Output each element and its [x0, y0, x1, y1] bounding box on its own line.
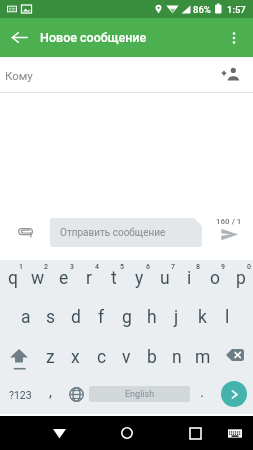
- staticText: ,: [49, 383, 52, 401]
- button[interactable]: ?123: [0, 375, 38, 414]
- button[interactable]: l: [215, 298, 240, 336]
- staticText: 4: [95, 263, 99, 271]
- staticText: 0: [247, 263, 251, 271]
- staticText: b: [147, 347, 157, 368]
- staticText: .: [200, 383, 204, 401]
- staticText: English: [125, 389, 155, 400]
- staticText: c: [97, 347, 107, 368]
- button[interactable]: Switch keyboard: [218, 416, 252, 450]
- button[interactable]: 2: [25, 259, 50, 297]
- staticText: 5: [120, 263, 124, 271]
- button[interactable]: h: [139, 298, 164, 336]
- staticText: 160 / 1: [216, 217, 242, 226]
- button[interactable]: More options: [214, 18, 253, 57]
- staticText: w: [31, 268, 45, 289]
- button[interactable]: Send: [204, 215, 252, 253]
- button[interactable]: 9: [202, 259, 227, 297]
- staticText: u: [160, 268, 170, 289]
- staticText: x: [71, 347, 80, 368]
- button[interactable]: n: [164, 338, 189, 376]
- staticText: m: [195, 347, 211, 368]
- button[interactable]: ,: [38, 375, 63, 414]
- button[interactable]: Отправить сообщение: [50, 218, 202, 247]
- button[interactable]: x: [63, 338, 88, 376]
- staticText: z: [46, 347, 55, 368]
- button[interactable]: 1: [0, 259, 25, 297]
- button[interactable]: 6: [127, 259, 152, 297]
- staticText: p: [236, 268, 246, 289]
- staticText: n: [172, 347, 182, 368]
- button[interactable]: Back: [42, 416, 76, 450]
- staticText: v: [122, 347, 131, 368]
- staticText: 8: [196, 263, 200, 271]
- staticText: s: [46, 307, 56, 328]
- button[interactable]: 5: [101, 259, 126, 297]
- button[interactable]: 8: [177, 259, 202, 297]
- button[interactable]: 4: [76, 259, 101, 297]
- button[interactable]: English: [89, 386, 190, 402]
- staticText: a: [21, 307, 31, 328]
- staticText: ?123: [9, 389, 32, 401]
- staticText: g: [122, 307, 132, 328]
- staticText: Новое сообщение: [40, 30, 147, 45]
- button[interactable]: c: [89, 338, 114, 376]
- button[interactable]: m: [190, 338, 215, 376]
- button[interactable]: Add contact: [217, 61, 247, 87]
- button[interactable]: Home: [110, 416, 144, 450]
- button[interactable]: 0: [228, 259, 253, 297]
- button[interactable]: 3: [51, 259, 76, 297]
- button[interactable]: v: [114, 338, 139, 376]
- staticText: i: [187, 268, 192, 289]
- button[interactable]: .: [190, 375, 214, 414]
- staticText: 3: [70, 263, 74, 271]
- button[interactable]: k: [190, 298, 215, 336]
- button[interactable]: Back: [0, 18, 39, 57]
- button[interactable]: f: [89, 298, 114, 336]
- button[interactable]: Enter: [221, 381, 247, 407]
- button[interactable]: d: [63, 298, 88, 336]
- staticText: y: [135, 268, 144, 289]
- staticText: f: [98, 307, 105, 328]
- staticText: 1: [19, 263, 23, 271]
- button[interactable]: Change language: [63, 375, 89, 414]
- staticText: t: [111, 268, 117, 289]
- staticText: 9: [221, 263, 225, 271]
- button[interactable]: Shift: [0, 340, 38, 378]
- button[interactable]: b: [139, 338, 164, 376]
- staticText: r: [86, 268, 92, 289]
- staticText: 86%: [193, 4, 211, 15]
- staticText: h: [147, 307, 157, 328]
- button[interactable]: Attach: [11, 219, 39, 247]
- button[interactable]: j: [164, 298, 189, 336]
- button[interactable]: g: [114, 298, 139, 336]
- button[interactable]: 7: [152, 259, 177, 297]
- staticText: e: [59, 268, 69, 289]
- staticText: Отправить сообщение: [60, 227, 166, 239]
- button[interactable]: Recent apps: [178, 416, 212, 450]
- staticText: 2: [44, 263, 48, 271]
- staticText: Кому: [5, 69, 33, 82]
- staticText: 1:57: [227, 4, 246, 15]
- button[interactable]: z: [38, 338, 63, 376]
- staticText: 7: [171, 263, 175, 271]
- button[interactable]: s: [38, 298, 63, 336]
- button[interactable]: a: [13, 298, 38, 336]
- staticText: d: [71, 307, 81, 328]
- staticText: j: [174, 307, 179, 328]
- staticText: 6: [146, 263, 150, 271]
- staticText: q: [8, 268, 18, 289]
- staticText: k: [198, 307, 207, 328]
- button[interactable]: Backspace: [216, 336, 253, 374]
- staticText: l: [225, 307, 230, 328]
- staticText: o: [210, 268, 220, 289]
